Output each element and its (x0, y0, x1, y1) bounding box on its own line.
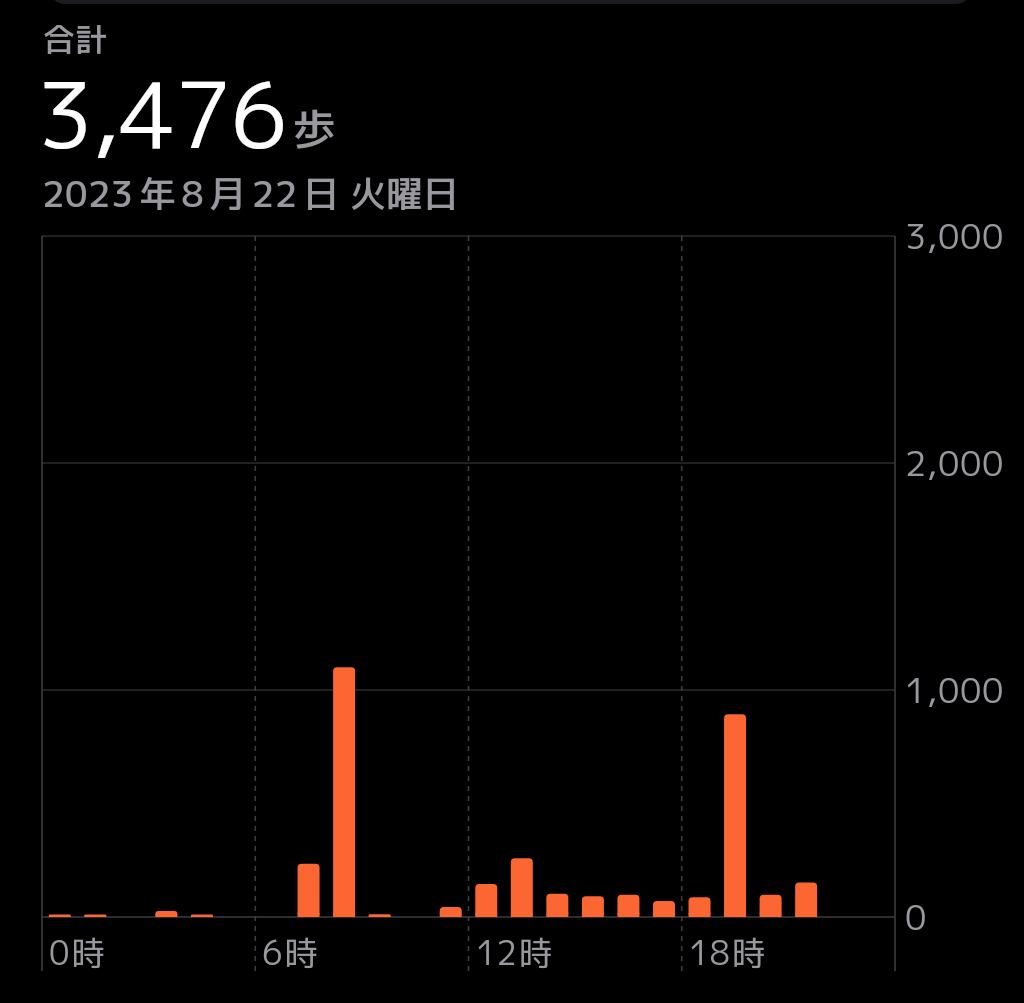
button[interactable]: 時間別の歩数グラフ (42, 236, 895, 971)
staticText: 3,476 (37, 50, 287, 177)
staticText: 6 時 (262, 930, 318, 976)
staticText: 18 時 (689, 930, 765, 976)
staticText: 0 (905, 893, 927, 941)
staticText: 12 時 (476, 930, 552, 976)
staticText: 合計 (43, 17, 108, 62)
staticText: 0 時 (49, 930, 105, 976)
staticText: 歩 (293, 99, 336, 159)
staticText: 2023 年 8 月 22 日 火曜日 (42, 168, 459, 219)
staticText: 2,000 (905, 439, 1005, 487)
staticText: 3,000 (905, 212, 1005, 260)
staticText: 1,000 (905, 666, 1005, 714)
button[interactable]: 前のカード (49, 0, 972, 4)
